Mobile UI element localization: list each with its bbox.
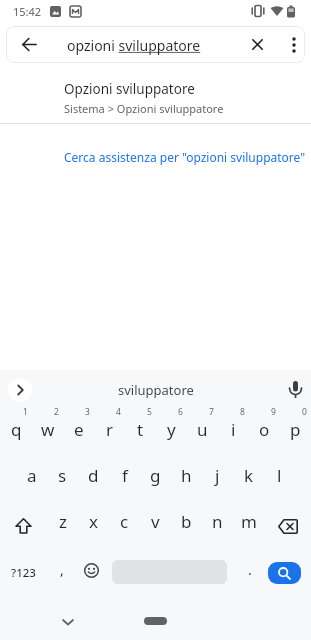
staticText: 5 [147, 406, 152, 418]
staticText: u [197, 418, 208, 441]
button[interactable]: d [78, 450, 109, 496]
button[interactable] [144, 617, 167, 625]
staticText: b [181, 510, 192, 533]
button[interactable] [288, 37, 300, 53]
button[interactable]: q [0, 404, 32, 450]
button[interactable]: r [94, 404, 125, 450]
staticText: y [167, 418, 176, 441]
staticText: 4 [116, 406, 121, 418]
button[interactable]: e [63, 404, 94, 450]
staticText: 9 [271, 406, 276, 418]
button[interactable]: m [233, 496, 264, 542]
staticText: m [241, 510, 257, 533]
button[interactable]: k [233, 450, 264, 496]
staticText: 3 [85, 406, 90, 418]
staticText: e [74, 418, 84, 441]
staticText: f [122, 464, 128, 487]
button[interactable] [289, 381, 302, 400]
button[interactable]: i [218, 404, 249, 450]
button[interactable] [84, 563, 99, 578]
button[interactable]: , [46, 542, 78, 588]
button[interactable]: a [16, 450, 47, 496]
staticText: w [41, 418, 55, 441]
staticText: a [27, 464, 37, 487]
button[interactable] [8, 378, 32, 402]
button[interactable]: n [202, 496, 233, 542]
button[interactable] [264, 496, 311, 542]
staticText: opzioni sviluppatore [67, 36, 201, 55]
button[interactable]: ?123 [0, 542, 46, 588]
button[interactable] [22, 37, 37, 52]
staticText: 0 [302, 406, 307, 418]
button[interactable]: z [47, 496, 78, 542]
button[interactable] [252, 39, 263, 50]
button[interactable] [0, 496, 47, 542]
button[interactable]: v [140, 496, 171, 542]
staticText: g [150, 464, 161, 487]
staticText: k [244, 464, 254, 487]
button[interactable]: p [280, 404, 311, 450]
staticText: ?123 [11, 565, 36, 581]
staticText: Sistema > Opzioni sviluppatore [64, 101, 224, 116]
button[interactable]: sviluppatore [0, 370, 311, 410]
staticText: j [215, 464, 220, 487]
staticText: v [151, 510, 160, 533]
button[interactable]: w [32, 404, 63, 450]
staticText: p [290, 418, 301, 441]
button[interactable]: o [249, 404, 280, 450]
staticText: 7 [209, 406, 214, 418]
button[interactable]: h [171, 450, 202, 496]
staticText: sviluppatore [118, 381, 194, 399]
button[interactable]: opzioni sviluppatore [6, 26, 305, 63]
button[interactable]: b [171, 496, 202, 542]
staticText: l [277, 464, 282, 487]
button[interactable]: . [236, 542, 264, 588]
staticText: 15:42 [13, 4, 42, 19]
staticText: c [120, 510, 129, 533]
button[interactable]: x [78, 496, 109, 542]
staticText: s [58, 464, 67, 487]
staticText: r [106, 418, 114, 441]
staticText: 2 [54, 406, 59, 418]
button[interactable] [268, 562, 301, 584]
staticText: 1 [23, 406, 28, 418]
staticText: 8 [240, 406, 245, 418]
button[interactable]: u [187, 404, 218, 450]
button[interactable]: Opzioni sviluppatore [0, 76, 311, 123]
button[interactable]: c [109, 496, 140, 542]
staticText: Opzioni sviluppatore [64, 80, 195, 98]
button[interactable]: s [47, 450, 78, 496]
button[interactable]: f [109, 450, 140, 496]
staticText: n [212, 510, 223, 533]
staticText: 6 [178, 406, 183, 418]
button[interactable]: y [156, 404, 187, 450]
button[interactable]: Cerca assistenza per "opzioni sviluppato… [64, 124, 306, 173]
staticText: , [60, 560, 64, 579]
staticText: z [59, 510, 67, 533]
button[interactable]: l [264, 450, 295, 496]
button[interactable]: t [125, 404, 156, 450]
staticText: q [11, 418, 22, 441]
staticText: i [231, 418, 236, 441]
staticText: d [88, 464, 99, 487]
button[interactable] [62, 619, 74, 626]
staticText: o [259, 418, 270, 441]
button[interactable]: g [140, 450, 171, 496]
staticText: x [89, 510, 98, 533]
staticText: t [137, 418, 144, 441]
staticText: . [248, 560, 252, 579]
button[interactable]: j [202, 450, 233, 496]
staticText: h [181, 464, 192, 487]
